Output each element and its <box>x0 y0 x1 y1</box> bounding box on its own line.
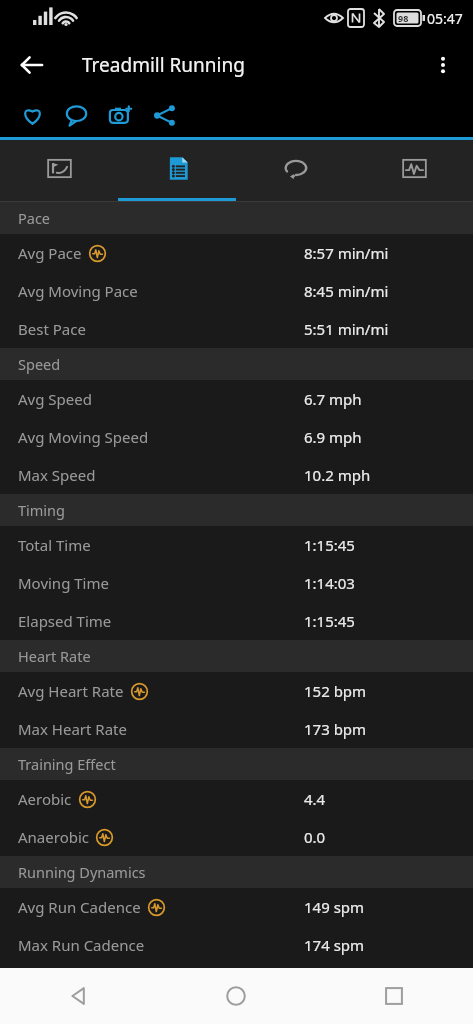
button[interactable]: Back <box>0 968 157 1024</box>
button[interactable]: Max Heart Rate <box>0 710 473 748</box>
button[interactable]: Share <box>142 93 186 137</box>
staticText: Moving Time <box>18 573 109 593</box>
button[interactable]: Avg Pace <box>0 234 473 272</box>
staticText: Best Pace <box>18 319 86 339</box>
button[interactable]: Avg Moving Pace <box>0 272 473 310</box>
button[interactable]: Total Time <box>0 526 473 564</box>
button[interactable]: Avg Speed <box>0 380 473 418</box>
button[interactable]: Avg Heart Rate <box>0 672 473 710</box>
staticText: Running Dynamics <box>18 862 146 882</box>
staticText: Pace <box>18 208 51 228</box>
button[interactable]: Anaerobic <box>0 818 473 856</box>
button[interactable]: Avg Moving Speed <box>0 418 473 456</box>
staticText: 152 bpm <box>304 681 367 701</box>
staticText: Anaerobic <box>18 827 89 847</box>
staticText: Heart Rate <box>18 646 91 666</box>
button[interactable]: Like <box>10 93 54 137</box>
staticText: Aerobic <box>18 789 72 809</box>
button[interactable]: Map <box>0 140 119 202</box>
staticText: Training Effect <box>18 754 116 774</box>
staticText: Avg Moving Pace <box>18 281 138 301</box>
button[interactable]: Charts <box>355 140 473 202</box>
staticText: 6.7 mph <box>304 389 362 409</box>
staticText: 8:45 min/mi <box>304 281 389 301</box>
staticText: Avg Pace <box>18 243 82 263</box>
staticText: Max Heart Rate <box>18 719 127 739</box>
staticText: 0.0 <box>304 827 326 847</box>
button[interactable]: Home <box>157 968 315 1024</box>
staticText: 4.4 <box>304 789 326 809</box>
staticText: 05:47 <box>427 9 463 28</box>
staticText: Avg Speed <box>18 389 92 409</box>
button[interactable]: Max Speed <box>0 456 473 494</box>
staticText: 1:15:45 <box>304 535 355 555</box>
button[interactable]: Details <box>119 140 237 202</box>
staticText: 173 bpm <box>304 719 367 739</box>
staticText: Avg Heart Rate <box>18 681 124 701</box>
button[interactable]: More options <box>419 41 467 89</box>
button[interactable]: Elapsed Time <box>0 602 473 640</box>
button[interactable]: Moving Time <box>0 564 473 602</box>
button[interactable]: Best Pace <box>0 310 473 348</box>
staticText: Max Speed <box>18 465 96 485</box>
staticText: 8:57 min/mi <box>304 243 389 263</box>
button[interactable]: Back <box>8 41 56 89</box>
staticText: 1:15:45 <box>304 611 355 631</box>
button[interactable]: Max Run Cadence <box>0 926 473 964</box>
staticText: Timing <box>18 500 65 520</box>
staticText: 1:14:03 <box>304 573 355 593</box>
staticText: Total Time <box>18 535 91 555</box>
staticText: 98 <box>398 12 409 24</box>
staticText: Max Run Cadence <box>18 935 145 955</box>
staticText: 149 spm <box>304 897 365 917</box>
staticText: 10.2 mph <box>304 465 371 485</box>
button[interactable]: Laps <box>237 140 355 202</box>
staticText: 5:51 min/mi <box>304 319 389 339</box>
button[interactable]: Avg Run Cadence <box>0 888 473 926</box>
staticText: 174 spm <box>304 935 365 955</box>
staticText: 6.9 mph <box>304 427 362 447</box>
button[interactable]: Add photo <box>98 93 142 137</box>
button[interactable]: Aerobic <box>0 780 473 818</box>
staticText: Avg Moving Speed <box>18 427 149 447</box>
staticText: Avg Run Cadence <box>18 897 141 917</box>
button[interactable]: Comment <box>54 93 98 137</box>
staticText: Elapsed Time <box>18 611 112 631</box>
staticText: Treadmill Running <box>82 52 245 78</box>
button[interactable]: Recent apps <box>315 968 473 1024</box>
staticText: Speed <box>18 354 61 374</box>
